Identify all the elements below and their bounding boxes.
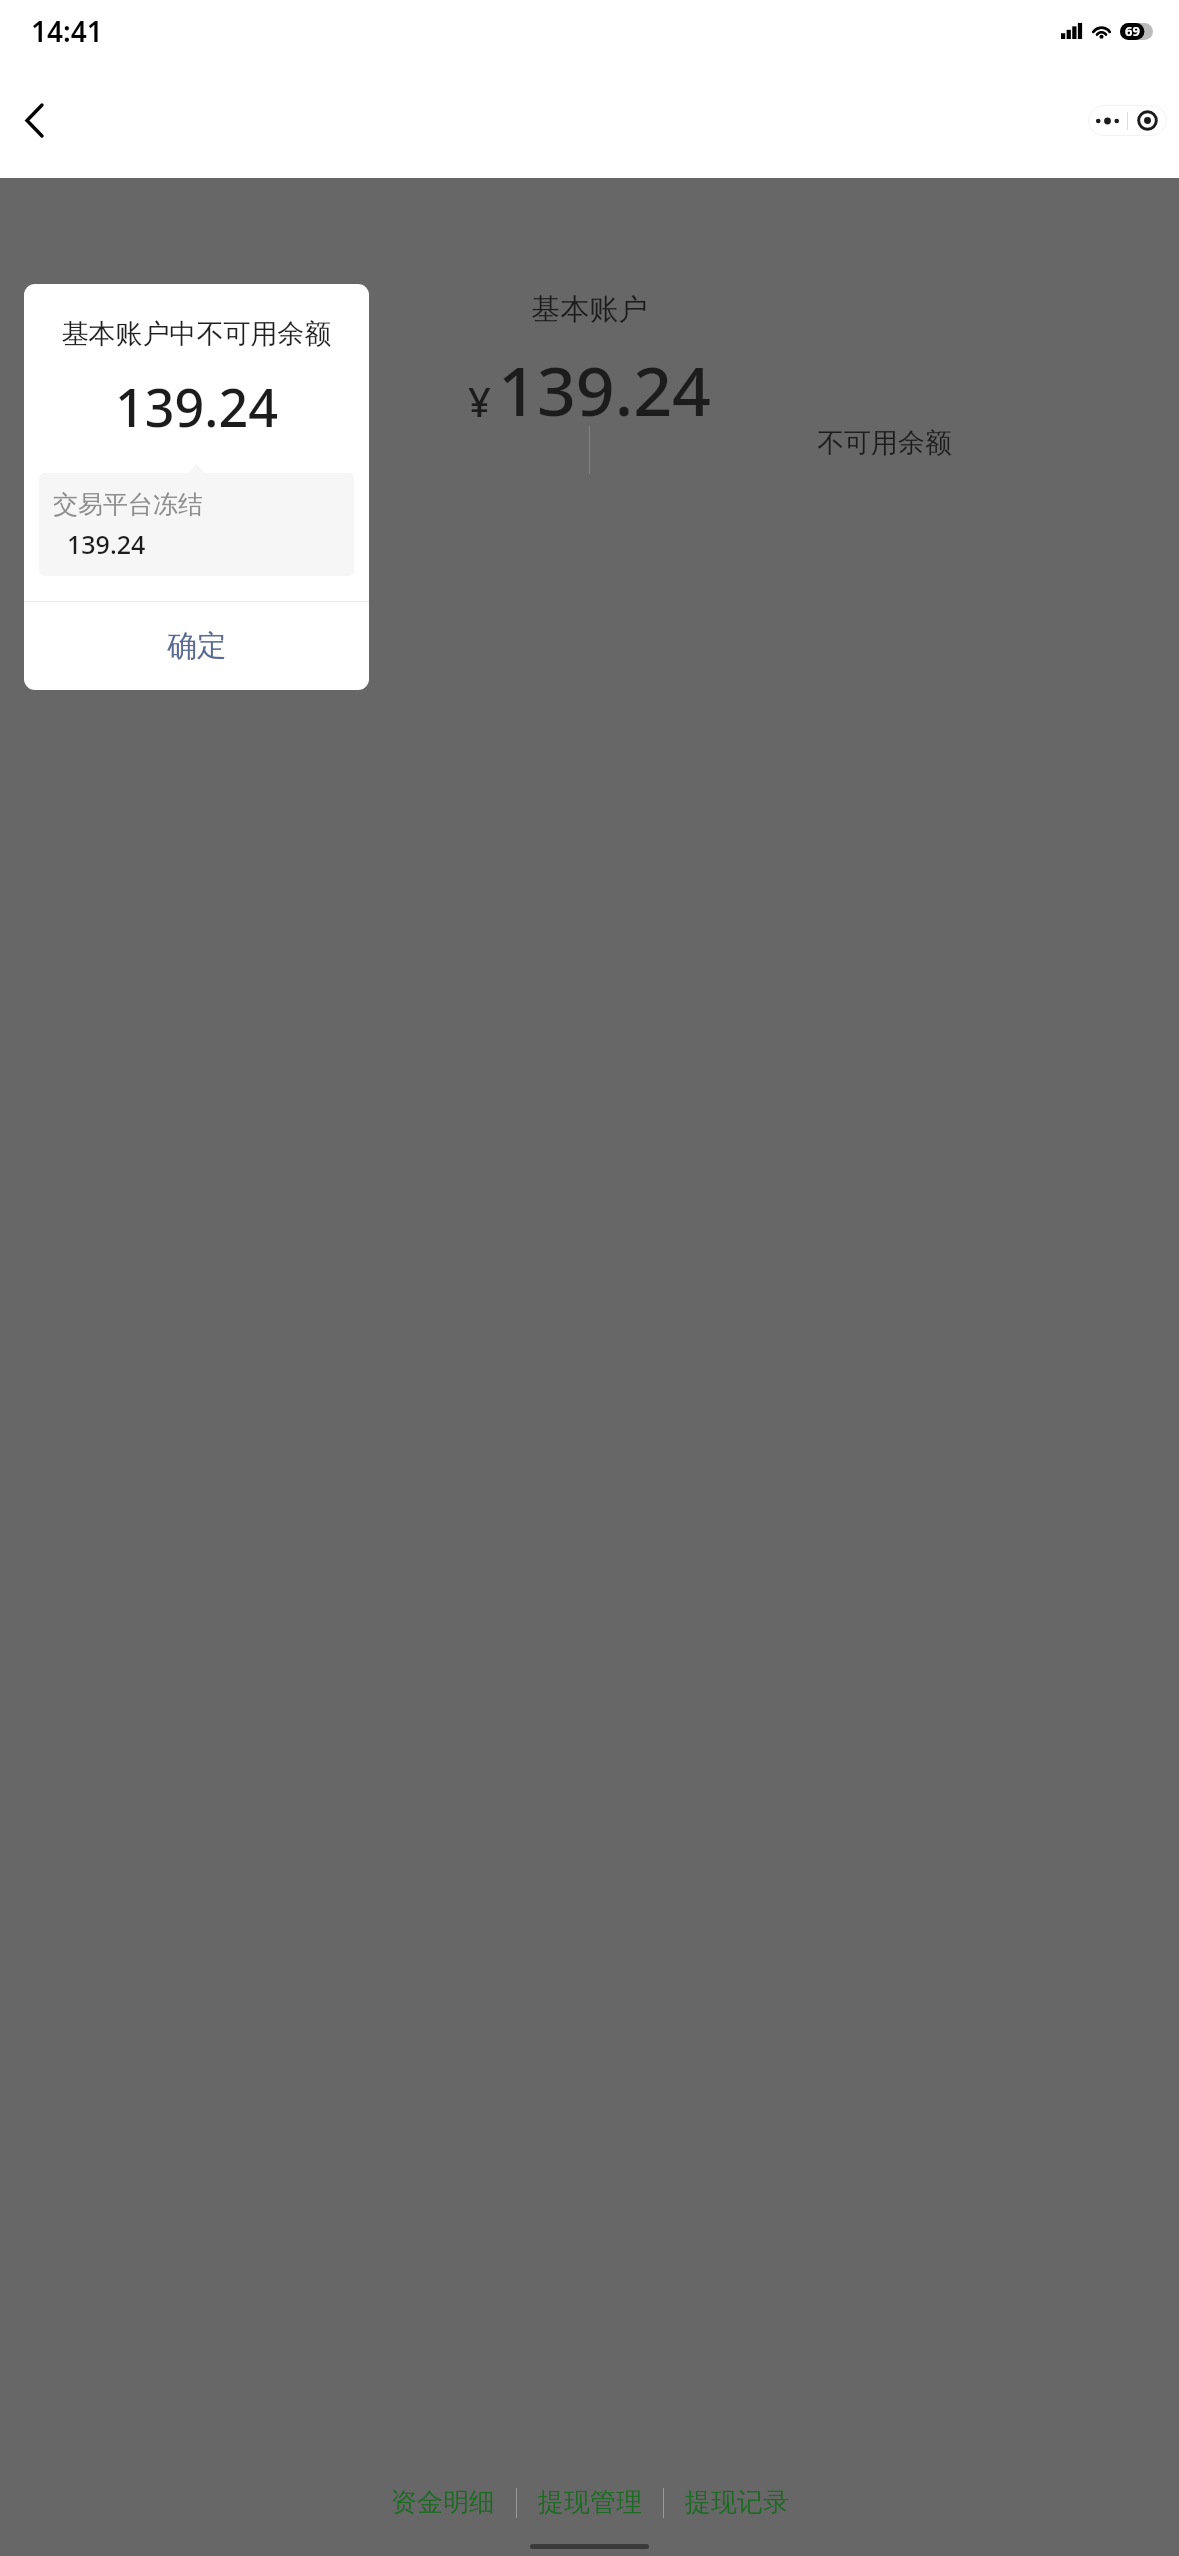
button[interactable]: More: [1088, 105, 1127, 136]
button[interactable]: Close mini program: [1128, 105, 1167, 136]
staticText: 不可用余额: [817, 426, 952, 460]
staticText: 可用余额: [241, 426, 349, 460]
staticText: 基本账户中不可用余额: [24, 317, 369, 351]
staticText: 提现管理: [538, 2486, 642, 2519]
button[interactable]: 资金明细: [370, 2479, 516, 2526]
staticText: 资金明细: [391, 2486, 495, 2519]
staticText: 基本账户: [0, 291, 1179, 328]
staticText: ¥: [468, 374, 491, 428]
staticText: 139.24: [67, 527, 146, 561]
button[interactable]: Back: [5, 91, 63, 149]
staticText: 139.24: [498, 343, 711, 436]
staticText: 交易平台冻结: [53, 489, 203, 520]
staticText: 确定: [167, 627, 227, 665]
button[interactable]: 确定: [24, 602, 369, 690]
button[interactable]: 提现记录: [664, 2479, 810, 2526]
staticText: 139.24: [24, 371, 369, 442]
staticText: 14:41: [31, 12, 103, 50]
staticText: 69: [1125, 22, 1140, 40]
staticText: 提现记录: [685, 2486, 789, 2519]
button[interactable]: 提现管理: [517, 2479, 663, 2526]
